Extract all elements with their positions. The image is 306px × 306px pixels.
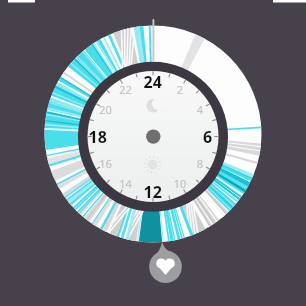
button[interactable] [150,251,182,283]
